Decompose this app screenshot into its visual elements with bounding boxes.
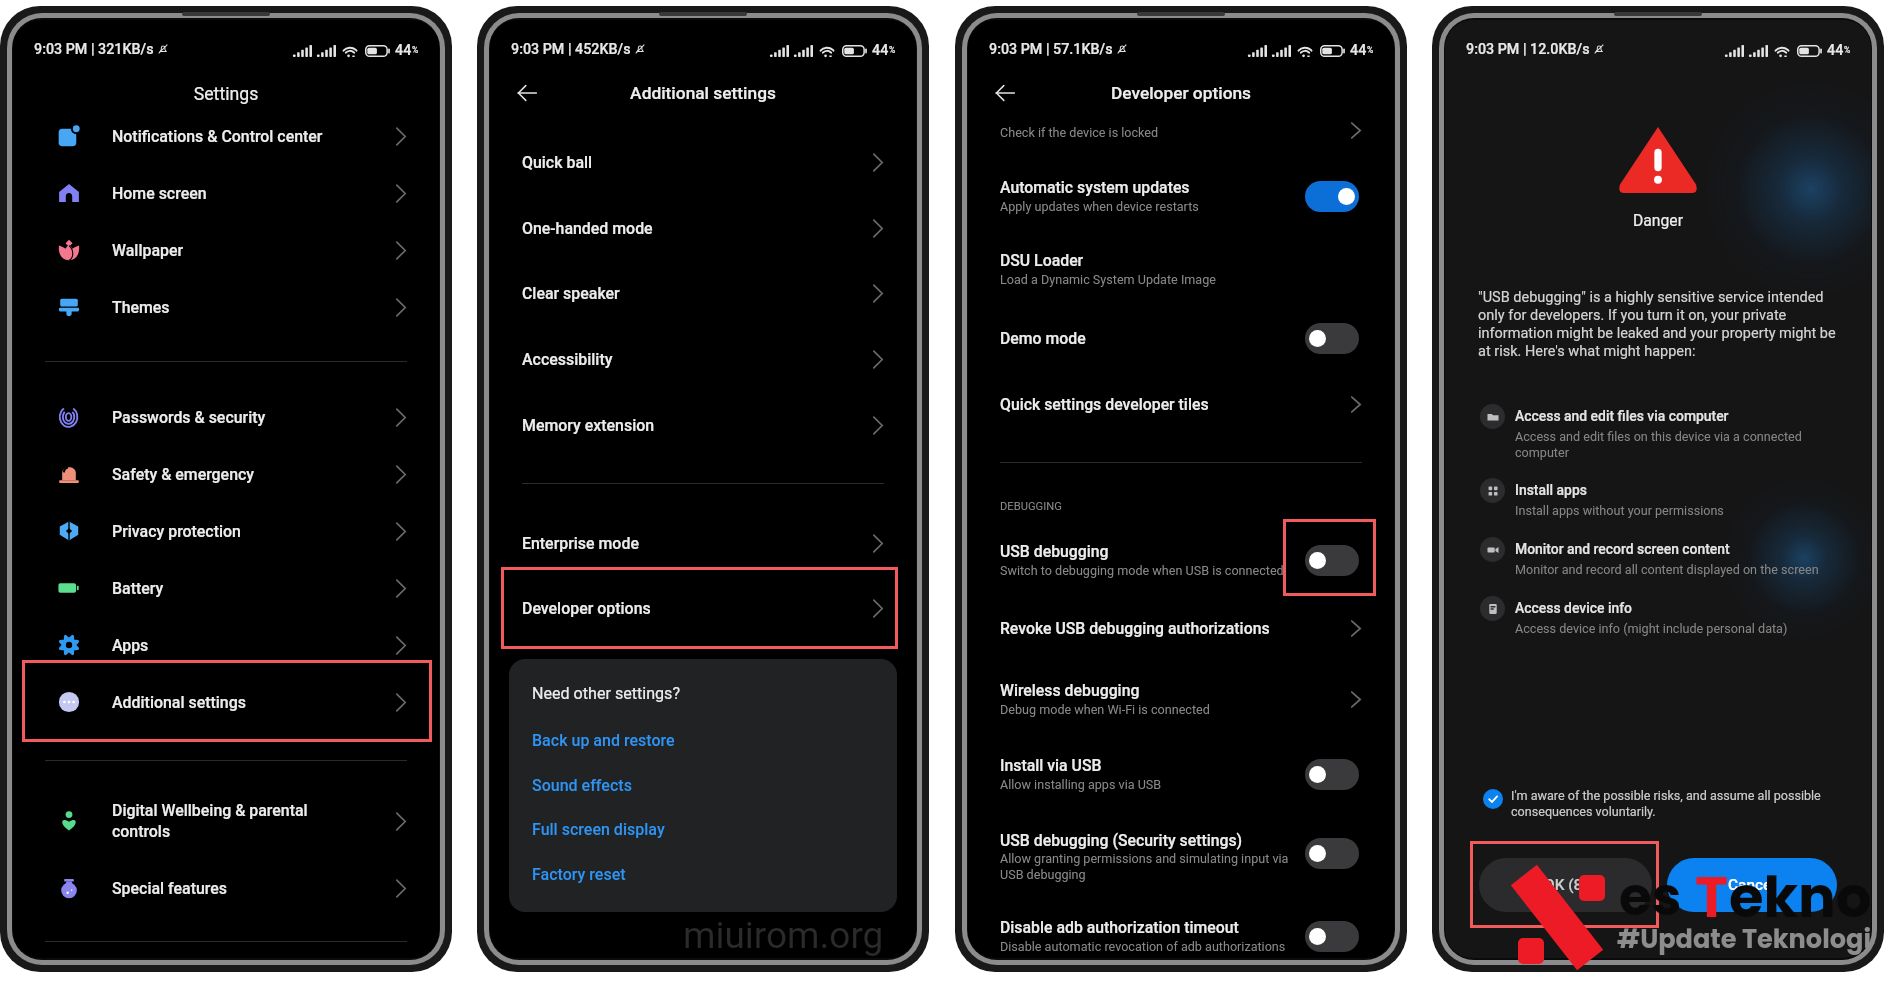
staticText: Developer options (968, 83, 1394, 103)
button[interactable]: Passwords & security (13, 389, 439, 445)
button[interactable] (1478, 785, 1838, 825)
staticText: Battery (112, 579, 396, 598)
button[interactable]: Additional settings (13, 674, 439, 730)
button[interactable]: Themes (13, 279, 439, 335)
button[interactable]: Wallpaper (13, 222, 439, 278)
staticText: % (889, 45, 896, 55)
button[interactable]: Automatic system updates (1305, 181, 1359, 212)
button[interactable]: USB debugging (Security settings) (1305, 838, 1359, 869)
button[interactable]: Demo mode (1305, 323, 1359, 354)
staticText: Full screen display (532, 820, 665, 839)
staticText: Special features (112, 879, 396, 898)
button[interactable] (968, 376, 1394, 432)
button[interactable]: Sound effects (526, 770, 638, 800)
staticText: Access and edit files via computer (1515, 408, 1729, 424)
staticText: Need other settings? (532, 684, 681, 703)
button[interactable]: Enterprise mode (490, 511, 916, 575)
staticText: USB debugging (Security settings) (1000, 831, 1243, 850)
button[interactable] (968, 532, 1394, 588)
button[interactable] (1478, 592, 1838, 636)
staticText: Wireless debugging (1000, 681, 1140, 700)
button[interactable]: Privacy protection (13, 503, 439, 559)
staticText: Debug mode when Wi-Fi is connected (1000, 702, 1210, 717)
button[interactable]: Quick ball (490, 130, 916, 194)
staticText: 9:03 PM | 57.1KB/s (989, 41, 1113, 58)
button[interactable]: Back (987, 75, 1023, 111)
staticText: Accessibility (522, 350, 873, 369)
button[interactable] (968, 310, 1394, 366)
staticText: es (1619, 859, 1682, 933)
staticText: Themes (112, 298, 396, 317)
button[interactable] (968, 168, 1394, 224)
button[interactable]: Developer options (490, 576, 916, 640)
staticText: Home screen (112, 184, 396, 203)
staticText: Install via USB (1000, 756, 1102, 775)
button[interactable]: Special features (13, 860, 439, 916)
staticText: Digital Wellbeing & parental controls (112, 801, 396, 841)
staticText: Factory reset (532, 865, 626, 884)
staticText: Enterprise mode (522, 534, 873, 553)
staticText: Apply updates when device restarts (1000, 199, 1199, 214)
staticText: #Update Teknologi (1617, 921, 1871, 957)
staticText: DSU Loader (1000, 251, 1084, 270)
button[interactable]: Clear speaker (490, 261, 916, 325)
button[interactable] (968, 241, 1394, 297)
button[interactable]: OK (8) (1479, 858, 1652, 912)
button[interactable]: Factory reset (526, 859, 632, 889)
staticText: Disable adb authorization timeout (1000, 918, 1239, 937)
button[interactable] (1478, 533, 1838, 577)
staticText: Notifications & Control center (112, 127, 396, 146)
button[interactable]: One-handed mode (490, 196, 916, 260)
staticText: Load a Dynamic System Update Image (1000, 272, 1216, 287)
button[interactable]: Memory extension (490, 393, 916, 457)
button[interactable]: Apps (13, 617, 439, 673)
button[interactable]: Accessibility (490, 327, 916, 391)
button[interactable] (968, 671, 1394, 727)
staticText: Clear speaker (522, 284, 873, 303)
button[interactable]: Digital Wellbeing & parental controls (13, 793, 439, 849)
button[interactable] (968, 600, 1394, 656)
staticText: 9:03 PM | 12.0KB/s (1466, 41, 1590, 58)
button[interactable]: Safety & emergency (13, 446, 439, 502)
staticText: 9:03 PM | 321KB/s (34, 41, 154, 58)
button[interactable] (968, 908, 1394, 958)
staticText: Access and edit files on this device via… (1515, 429, 1802, 460)
staticText: Quick ball (522, 153, 873, 172)
button[interactable]: Home screen (13, 165, 439, 221)
button[interactable] (1478, 400, 1838, 460)
staticText: Allow granting permissions and simulatin… (1000, 851, 1289, 882)
staticText: Additional settings (490, 83, 916, 103)
staticText: USB debugging (1000, 542, 1109, 561)
staticText: Additional settings (112, 693, 396, 712)
staticText: Sound effects (532, 776, 632, 795)
staticText: Revoke USB debugging authorizations (1000, 619, 1270, 638)
staticText: Wallpaper (112, 241, 396, 260)
button[interactable]: Install via USB (1305, 759, 1359, 790)
staticText: Disable automatic revocation of adb auth… (1000, 939, 1286, 954)
staticText: Safety & emergency (112, 465, 396, 484)
staticText: Check if the device is locked (1000, 125, 1159, 140)
button[interactable]: Notifications & Control center (13, 108, 439, 164)
button[interactable] (968, 825, 1394, 881)
staticText: "USB debugging" is a highly sensitive se… (1478, 289, 1848, 359)
staticText: Memory extension (522, 416, 873, 435)
button[interactable]: Back (509, 75, 545, 111)
staticText: Privacy protection (112, 522, 396, 541)
button[interactable]: Disable adb authorization timeout (1305, 921, 1359, 952)
button[interactable]: Full screen display (526, 814, 671, 844)
button[interactable]: Battery (13, 560, 439, 616)
staticText: Install apps (1515, 482, 1587, 498)
staticText: T (1695, 858, 1729, 936)
staticText: 44 (1827, 42, 1844, 59)
staticText: Cancel (1728, 876, 1776, 894)
staticText: I'm aware of the possible risks, and ass… (1511, 788, 1821, 820)
staticText: Automatic system updates (1000, 178, 1190, 197)
staticText: Monitor and record screen content (1515, 541, 1730, 557)
staticText: Developer options (522, 599, 873, 618)
staticText: DEBUGGING (1000, 500, 1062, 513)
button[interactable] (1478, 474, 1838, 518)
button[interactable]: Back up and restore (526, 725, 681, 755)
button[interactable] (968, 746, 1394, 802)
button[interactable]: Cancel (1667, 858, 1837, 912)
button[interactable]: USB debugging (1305, 545, 1359, 576)
